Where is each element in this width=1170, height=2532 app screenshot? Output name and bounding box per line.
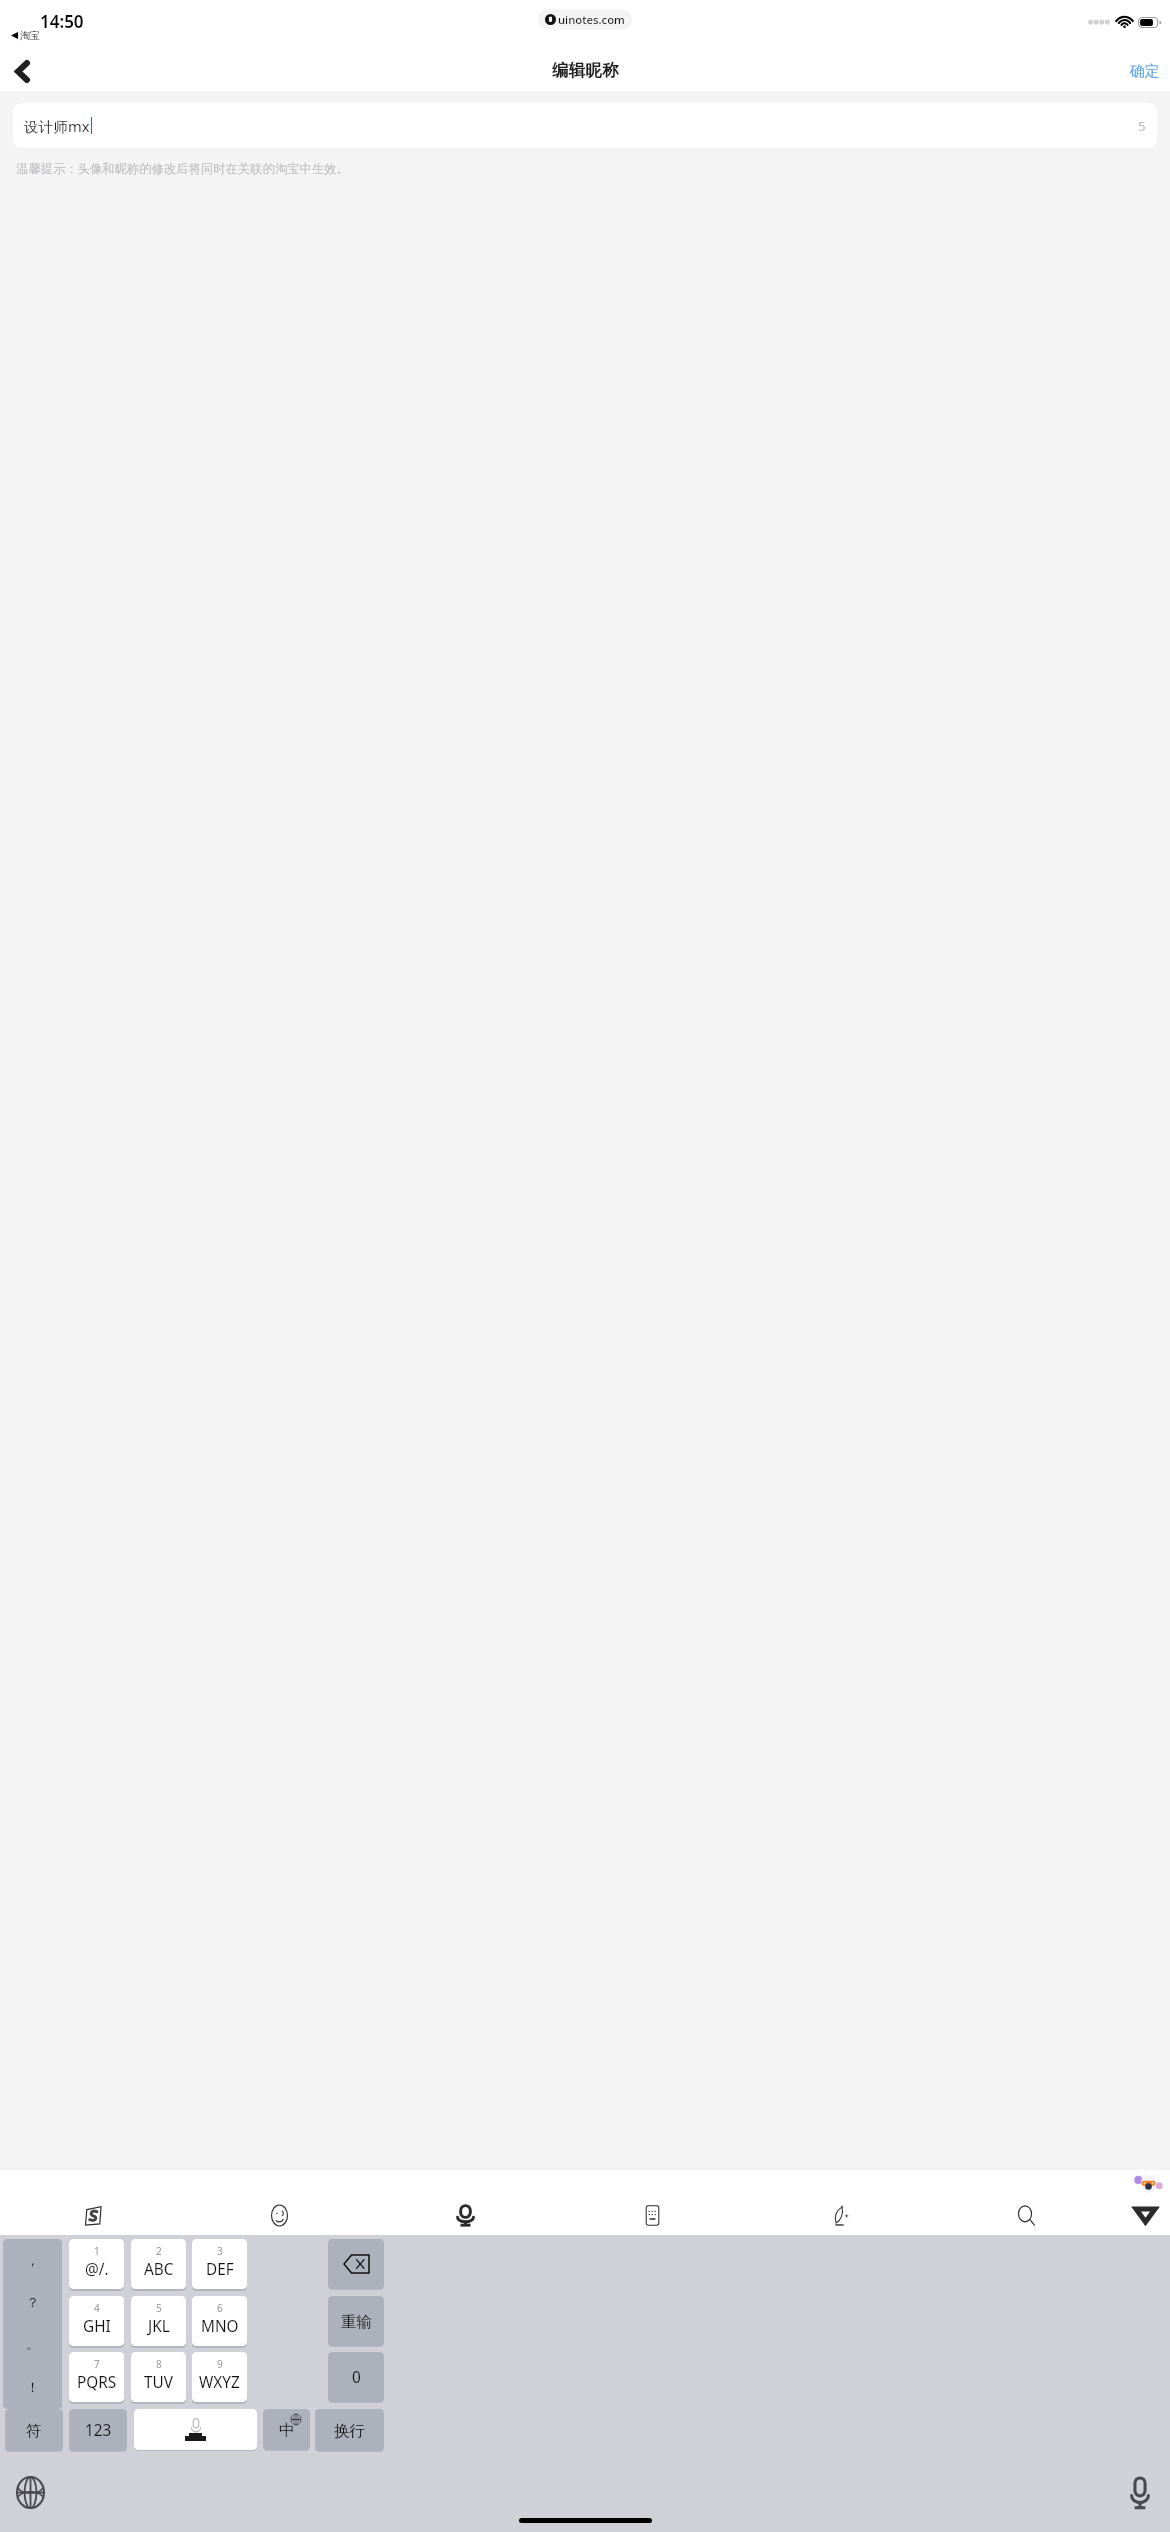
- staticText: 5: [1138, 117, 1146, 135]
- staticText: 符: [26, 2421, 42, 2440]
- staticText: 中: [279, 2420, 295, 2439]
- button[interactable]: 4: [69, 2296, 124, 2346]
- button[interactable]: 符: [5, 2409, 63, 2451]
- button[interactable]: 5: [131, 2296, 186, 2346]
- button[interactable]: 3: [192, 2239, 247, 2289]
- button[interactable]: 手写: [746, 2195, 933, 2235]
- staticText: ABC: [144, 2259, 174, 2280]
- button[interactable]: 7: [69, 2352, 124, 2402]
- staticText: 编辑昵称: [552, 60, 619, 81]
- staticText: JKL: [148, 2316, 170, 2337]
- button[interactable]: 表情: [1134, 2172, 1163, 2194]
- staticText: DEF: [206, 2259, 234, 2280]
- button[interactable]: 表情: [186, 2195, 372, 2235]
- staticText: 换行: [334, 2421, 365, 2440]
- staticText: 6: [217, 2301, 223, 2315]
- button[interactable]: 8: [131, 2352, 186, 2402]
- staticText: 9: [217, 2357, 223, 2371]
- staticText: 3: [217, 2244, 223, 2258]
- button[interactable]: 重输: [328, 2296, 384, 2346]
- button[interactable]: 语音: [372, 2195, 559, 2235]
- button[interactable]: 收起键盘: [1120, 2195, 1170, 2235]
- staticText: 4: [94, 2301, 100, 2315]
- button[interactable]: 搜索: [933, 2195, 1120, 2235]
- staticText: 14:50: [40, 10, 84, 33]
- button[interactable]: 换行: [315, 2409, 384, 2451]
- button[interactable]: 输入法: [0, 2195, 186, 2235]
- button[interactable]: 删除: [328, 2239, 384, 2289]
- staticText: uinotes.com: [558, 12, 625, 27]
- staticText: ！: [26, 2379, 40, 2396]
- button[interactable]: 切换键盘: [12, 2474, 49, 2511]
- staticText: 。: [26, 2336, 40, 2353]
- staticText: 8: [156, 2357, 162, 2371]
- staticText: 5: [156, 2301, 162, 2315]
- button[interactable]: 语音输入: [1121, 2474, 1158, 2511]
- staticText: 0: [352, 2367, 361, 2388]
- button[interactable]: 返回: [7, 56, 37, 86]
- button[interactable]: 6: [192, 2296, 247, 2346]
- staticText: GHI: [83, 2316, 111, 2337]
- staticText: 1: [94, 2244, 100, 2258]
- button[interactable]: 中: [263, 2409, 310, 2450]
- staticText: 设计师mx: [24, 116, 90, 136]
- button[interactable]: 0: [328, 2352, 384, 2402]
- staticText: 重输: [341, 2312, 372, 2331]
- button[interactable]: 2: [131, 2239, 186, 2289]
- staticText: 2: [156, 2244, 162, 2258]
- staticText: 淘宝: [20, 29, 40, 42]
- staticText: 123: [85, 2420, 112, 2441]
- staticText: ？: [26, 2294, 40, 2311]
- button[interactable]: 确定: [1126, 57, 1164, 85]
- button[interactable]: 设计师mx: [13, 103, 1157, 148]
- staticText: 温馨提示：头像和昵称的修改后将同时在关联的淘宝中生效。: [16, 161, 349, 177]
- staticText: ，: [26, 2252, 40, 2269]
- button[interactable]: 9: [192, 2352, 247, 2402]
- staticText: WXYZ: [199, 2372, 240, 2393]
- staticText: 7: [94, 2357, 100, 2371]
- staticText: PQRS: [77, 2372, 117, 2393]
- button[interactable]: 1: [69, 2239, 124, 2289]
- button[interactable]: 键盘: [559, 2195, 746, 2235]
- staticText: 确定: [1130, 62, 1160, 80]
- button[interactable]: 空格 语音: [134, 2409, 257, 2450]
- button[interactable]: 123: [69, 2409, 127, 2451]
- staticText: MNO: [201, 2316, 239, 2337]
- staticText: TUV: [144, 2372, 173, 2393]
- button[interactable]: ，: [3, 2239, 62, 2409]
- staticText: @/.: [85, 2259, 109, 2280]
